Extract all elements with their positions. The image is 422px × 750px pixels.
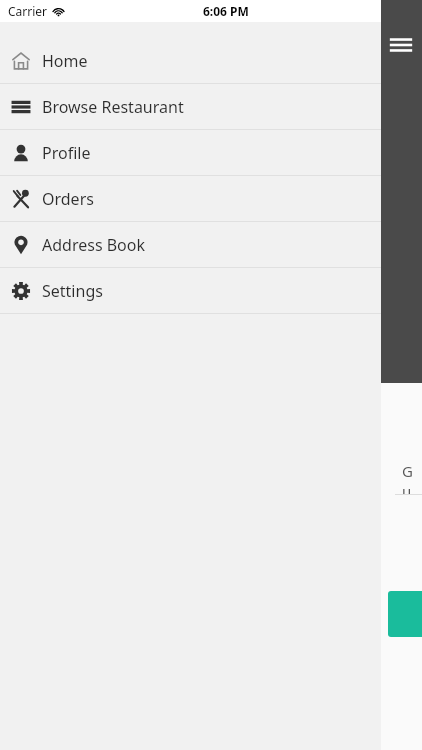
button[interactable]: Orders: [0, 176, 381, 221]
staticText: Home: [42, 50, 88, 72]
button[interactable]: Open menu: [388, 32, 414, 58]
staticText: Browse Restaurant: [42, 96, 184, 118]
staticText: Profile: [42, 142, 91, 164]
staticText: 6:06 PM: [203, 3, 249, 19]
button[interactable]: Settings: [0, 268, 381, 313]
button[interactable]: Profile: [0, 130, 381, 175]
button[interactable]: Browse Restaurant: [0, 84, 381, 129]
staticText: Orders: [42, 188, 94, 210]
staticText: Carrier: [8, 3, 48, 19]
button[interactable]: Address Book: [0, 222, 381, 267]
button[interactable]: Home: [0, 38, 381, 83]
staticText: Address Book: [42, 234, 146, 256]
staticText: Settings: [42, 280, 103, 302]
staticText: Gu: [402, 461, 422, 495]
button[interactable]: Submit: [388, 591, 422, 637]
